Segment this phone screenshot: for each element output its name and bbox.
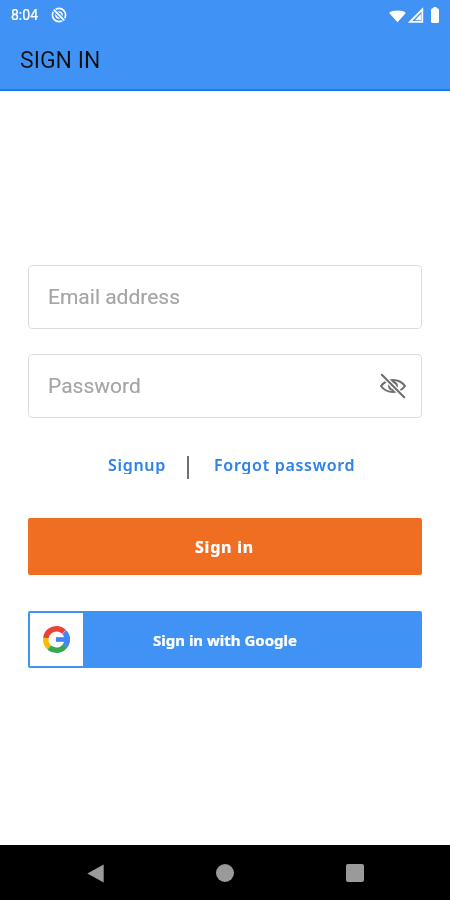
staticText: 8:04	[11, 7, 38, 23]
button[interactable]: Show password	[377, 370, 409, 402]
button[interactable]: Back	[71, 849, 119, 897]
button[interactable]: Home	[201, 849, 249, 897]
button[interactable]: Signup	[105, 454, 169, 480]
button[interactable]: Sign in with Google	[28, 611, 422, 668]
staticText: SIGN IN	[20, 47, 101, 74]
staticText: Sign in	[195, 536, 255, 558]
button[interactable]: Email address	[28, 265, 422, 329]
staticText: Sign in with Google	[153, 630, 298, 650]
button[interactable]: Password	[28, 354, 422, 418]
staticText: Signup	[108, 454, 166, 474]
button[interactable]: Forgot password	[211, 454, 359, 480]
staticText: Forgot password	[214, 454, 356, 474]
staticText: Email address	[48, 285, 181, 310]
button[interactable]: Sign in	[28, 518, 422, 575]
staticText: Password	[48, 374, 141, 399]
button[interactable]: Recents	[331, 849, 379, 897]
